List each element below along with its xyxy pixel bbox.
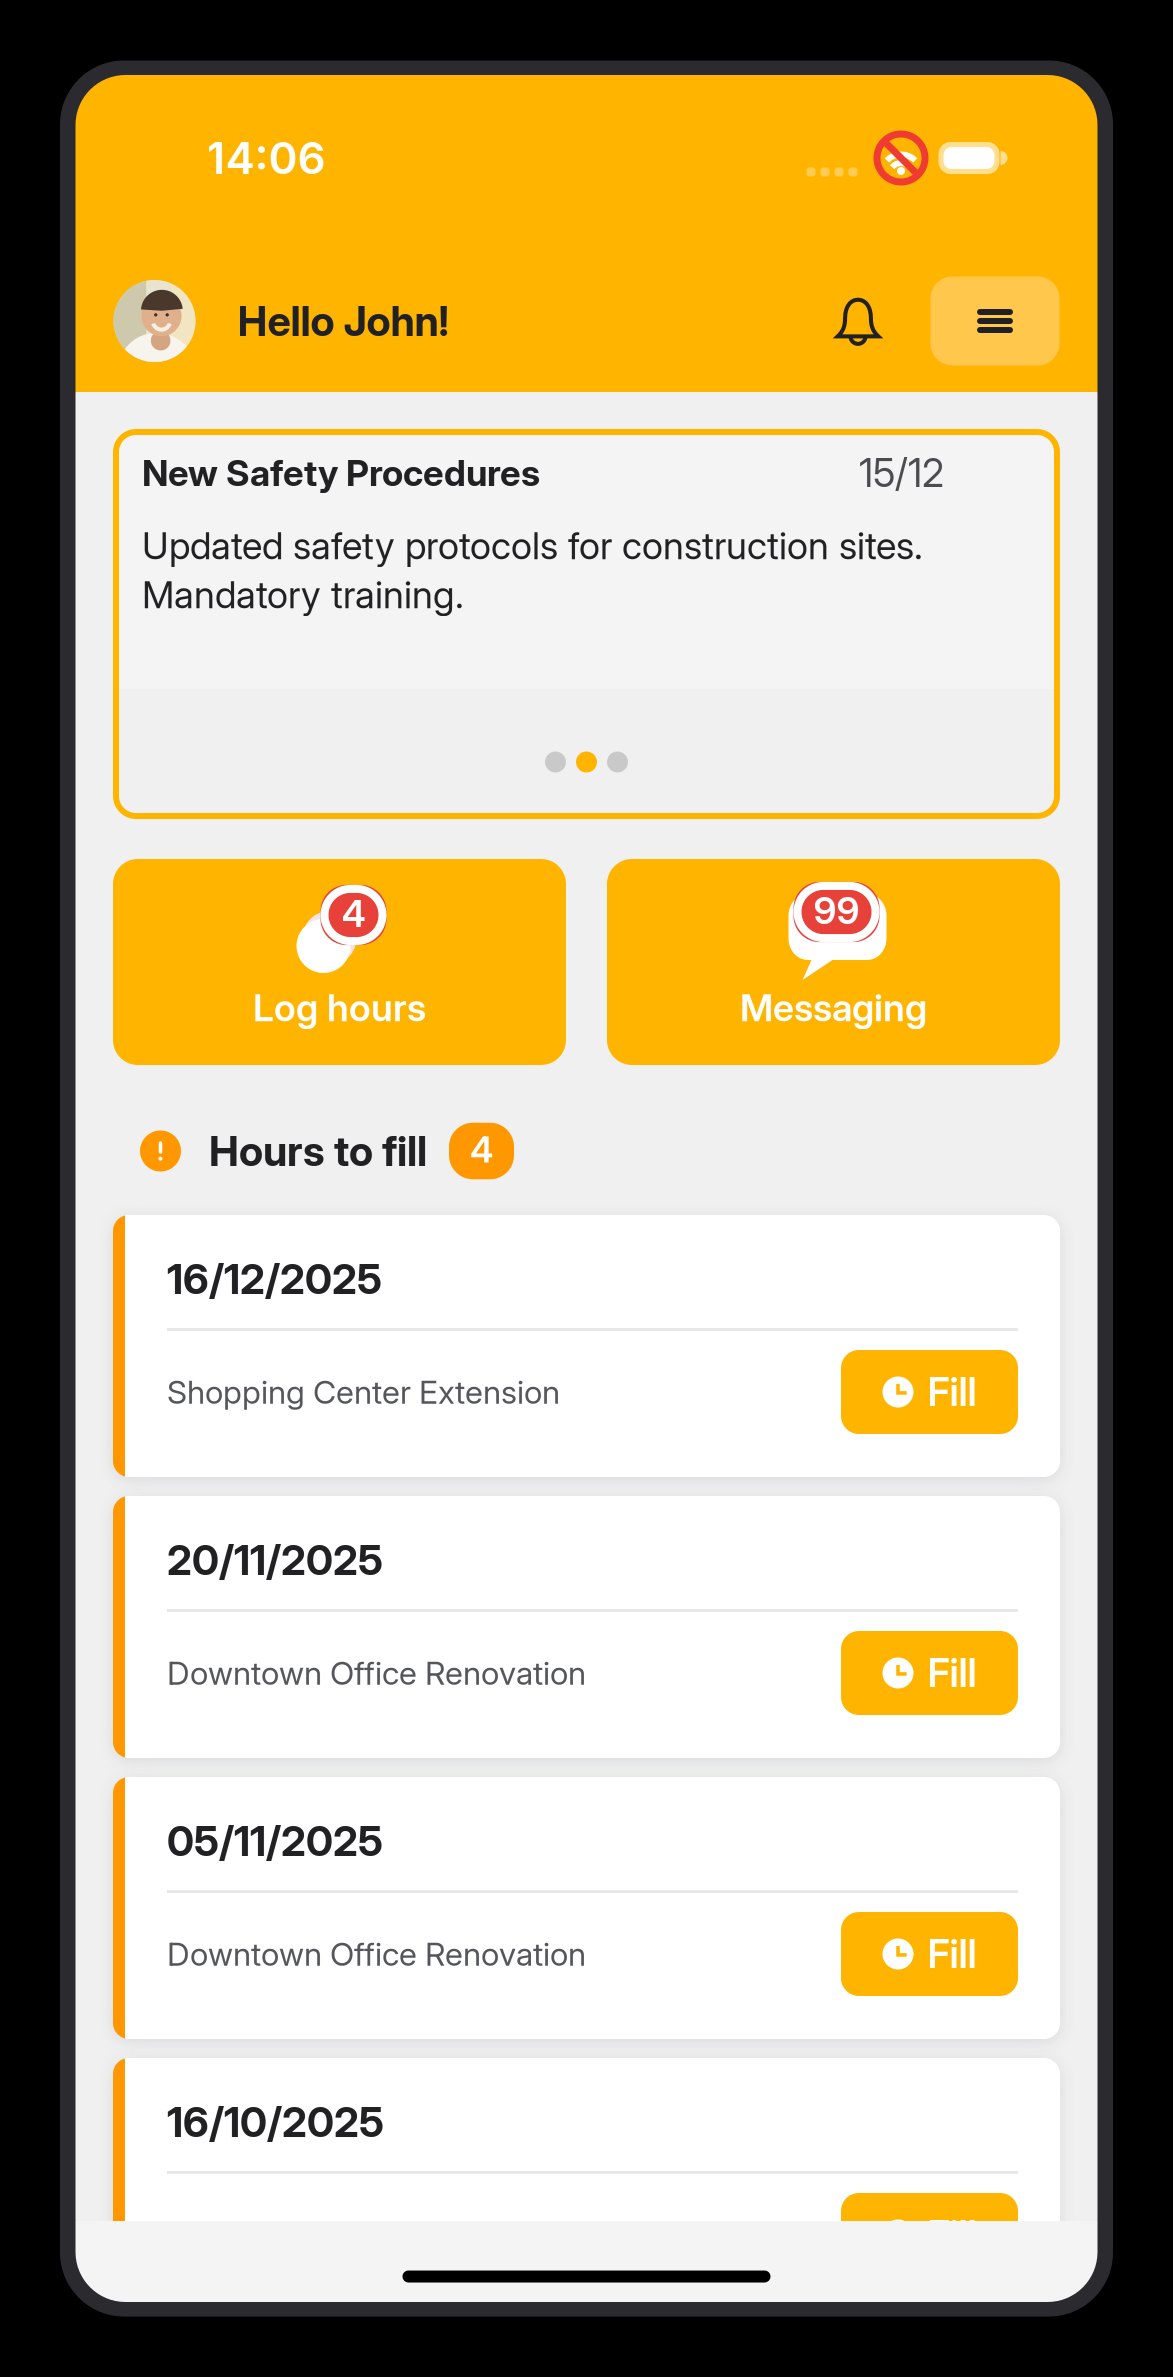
staticText: 4 [341,891,365,936]
staticText: 16/10/2025 [167,2097,384,2147]
staticText: 05/11/2025 [167,1816,383,1866]
staticText: Log hours [253,985,426,1030]
button[interactable]: Fill [841,1350,1018,1434]
button[interactable]: 4 [113,859,566,1065]
button[interactable]: 20/11/2025 [113,1496,1060,1758]
staticText: Fill [927,1931,976,1977]
staticText: New Safety Procedures [142,451,540,495]
button[interactable]: Hello John! [195,296,448,346]
staticText: 15/12 [859,450,944,496]
button[interactable]: Profile [113,280,195,362]
staticText: Downtown Office Renovation [167,1654,586,1692]
button[interactable]: 16/10/2025 [113,2058,1060,2320]
button[interactable]: 16/12/2025 [113,1215,1060,1477]
button[interactable]: New Safety Procedures [113,429,1060,819]
staticText: Shopping Center Extension [167,1373,560,1411]
staticText: Fill [927,1369,976,1415]
staticText: Hours to fill [209,1126,427,1176]
staticText: 16/12/2025 [167,1254,382,1304]
staticText: Fill [927,2212,976,2258]
button[interactable]: 99 [607,859,1060,1065]
staticText: Messaging [740,985,927,1030]
staticText: Mandatory training. [142,572,464,617]
button[interactable]: 05/11/2025 [113,1777,1060,2039]
staticText: 20/11/2025 [167,1535,383,1585]
staticText: 14:06 [206,131,325,185]
staticText: Downtown Office Renovation [167,1935,586,1973]
staticText: Updated safety protocols for constructio… [142,523,923,568]
staticText: Hello John! [237,296,448,346]
staticText: Downtown Office Renovation [167,2216,586,2254]
button[interactable]: Fill [841,2193,1018,2277]
staticText: 99 [813,888,859,933]
button[interactable]: Notifications [829,276,914,366]
staticText: Fill [927,1650,976,1696]
button[interactable]: Menu [930,276,1059,365]
button[interactable]: Fill [841,1912,1018,1996]
button[interactable]: Fill [841,1631,1018,1715]
staticText: 4 [470,1128,493,1171]
